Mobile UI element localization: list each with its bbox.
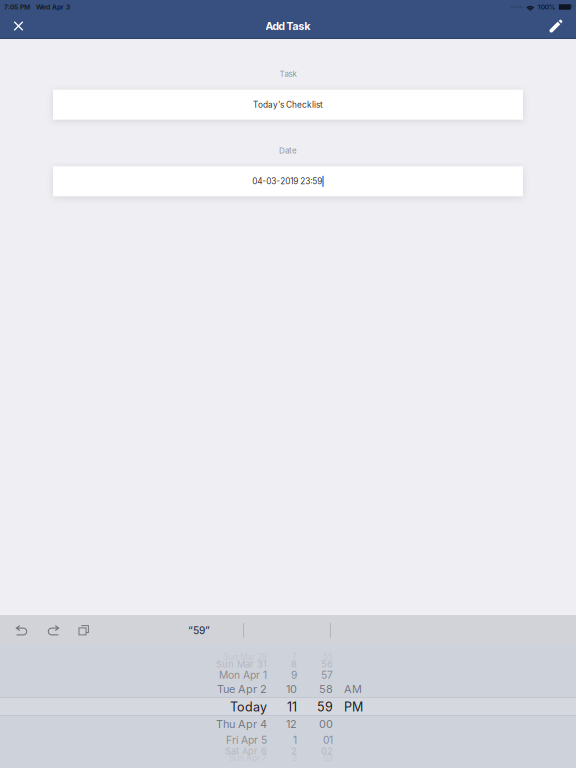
staticText: 56 xyxy=(321,658,333,670)
staticText: Mon Apr 1 xyxy=(219,669,267,681)
staticText: Sun Mar 29 xyxy=(223,652,267,662)
staticText: 8 xyxy=(291,658,297,670)
staticText: 00 xyxy=(319,717,333,731)
staticText: 59 xyxy=(317,699,333,715)
button[interactable]: Redo xyxy=(39,615,67,646)
staticText: Sat Apr 6 xyxy=(225,745,267,757)
staticText: Thu Apr 4 xyxy=(216,717,267,731)
staticText: 10 xyxy=(286,682,297,696)
staticText: AM xyxy=(344,682,362,696)
staticText: Sun Apr 7 xyxy=(229,753,267,763)
staticText: Fri Apr 5 xyxy=(226,734,267,746)
button[interactable]: Edit xyxy=(538,13,574,39)
staticText: Today xyxy=(230,699,267,715)
staticText: Date xyxy=(279,146,297,155)
staticText: 02 xyxy=(321,745,333,757)
staticText: Task xyxy=(279,69,296,79)
staticText: Today's Checklist xyxy=(253,100,323,110)
staticText: 9 xyxy=(291,669,297,681)
staticText: 7 xyxy=(292,652,297,662)
staticText: Sun Mar 31 xyxy=(216,658,267,670)
staticText: PM xyxy=(344,699,363,715)
staticText: 01 xyxy=(323,734,333,746)
staticText: 03 xyxy=(323,753,333,763)
button[interactable]: Close xyxy=(2,13,35,39)
staticText: 100% xyxy=(538,3,556,11)
staticText: 1 xyxy=(293,734,297,746)
staticText: 2 xyxy=(291,745,297,757)
button[interactable]: Undo xyxy=(8,615,36,646)
staticText: 58 xyxy=(319,682,333,696)
staticText: 55 xyxy=(323,652,333,662)
staticText: Add Task xyxy=(265,19,310,32)
button[interactable]: “59” xyxy=(155,615,243,646)
button[interactable]: Paste xyxy=(70,615,98,646)
staticText: 04-03-2019 23:59 xyxy=(252,176,322,186)
staticText: “59” xyxy=(188,624,210,637)
staticText: 3 xyxy=(292,753,297,763)
staticText: 12 xyxy=(286,717,297,731)
staticText: Tue Apr 2 xyxy=(217,682,267,696)
staticText: 7:05 PM xyxy=(4,3,30,11)
staticText: 11 xyxy=(287,699,297,715)
staticText: Wed Apr 3 xyxy=(36,3,70,11)
staticText: 57 xyxy=(321,669,333,681)
